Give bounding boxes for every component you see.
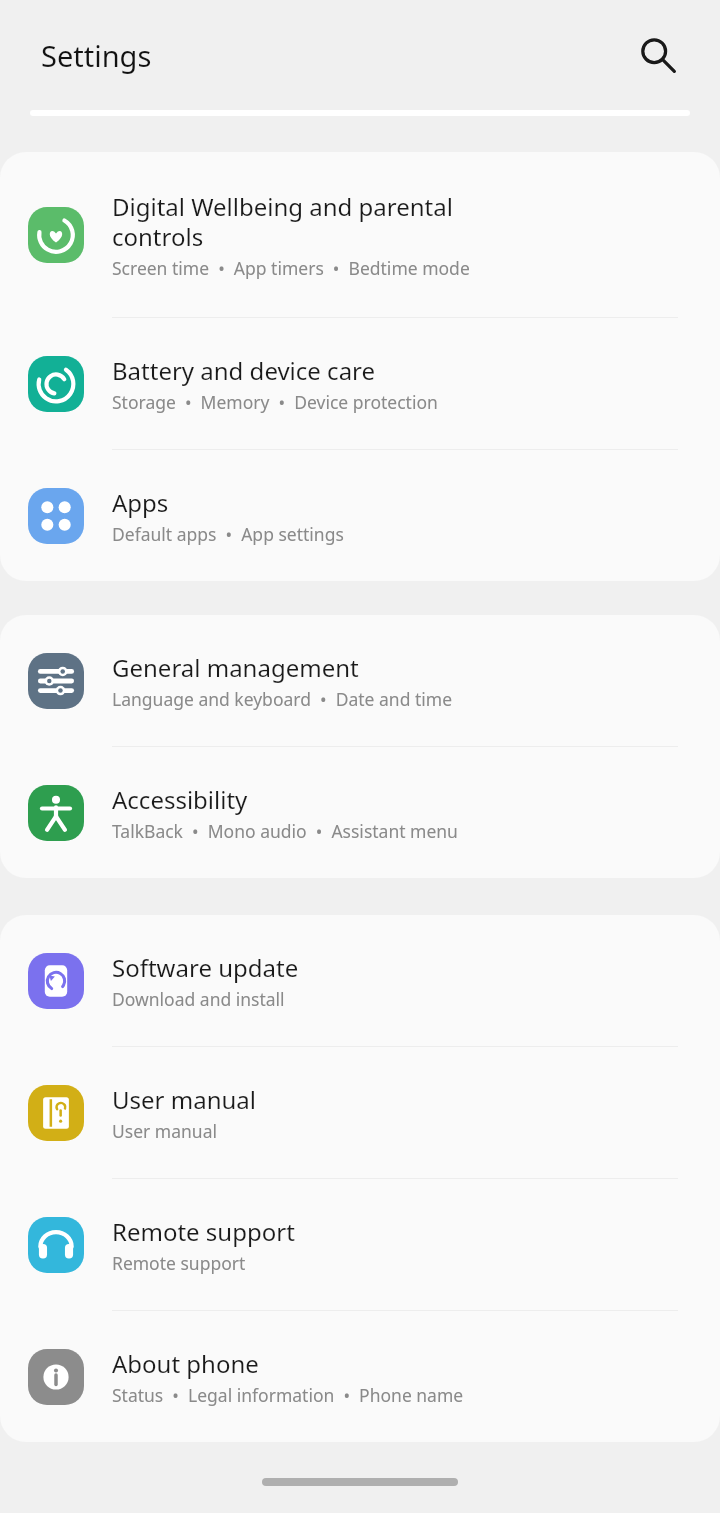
staticText: Default apps • App settings	[112, 522, 344, 546]
staticText: Remote support	[112, 1215, 295, 1248]
staticText: Language and keyboard • Date and time	[112, 687, 453, 711]
button[interactable]: About phone	[0, 1311, 720, 1442]
button[interactable]: Battery and device care	[0, 318, 720, 449]
staticText: User manual	[112, 1119, 217, 1143]
staticText: About phone	[112, 1347, 259, 1380]
staticText: Storage • Memory • Device protection	[112, 390, 438, 414]
button[interactable]: Apps	[0, 450, 720, 581]
staticText: TalkBack • Mono audio • Assistant menu	[112, 819, 458, 843]
button[interactable]: Software update	[0, 915, 720, 1046]
staticText: Remote support	[112, 1251, 246, 1275]
staticText: Battery and device care	[112, 354, 376, 387]
staticText: Apps	[112, 486, 169, 519]
button[interactable]: General management	[0, 615, 720, 746]
staticText: Status • Legal information • Phone name	[112, 1383, 464, 1407]
button[interactable]: Accessibility	[0, 747, 720, 878]
staticText: User manual	[112, 1083, 256, 1116]
button[interactable]: User manual	[0, 1047, 720, 1178]
staticText: Digital Wellbeing and parental controls	[112, 190, 453, 253]
staticText: Accessibility	[112, 783, 248, 816]
staticText: Download and install	[112, 987, 285, 1011]
staticText: Settings	[41, 36, 152, 75]
staticText: Software update	[112, 951, 299, 984]
button[interactable]: Search	[626, 23, 690, 87]
staticText: General management	[112, 651, 359, 684]
button[interactable]: Digital Wellbeing and parental controls	[0, 152, 720, 317]
button[interactable]: Remote support	[0, 1179, 720, 1310]
staticText: Screen time • App timers • Bedtime mode	[112, 256, 470, 280]
